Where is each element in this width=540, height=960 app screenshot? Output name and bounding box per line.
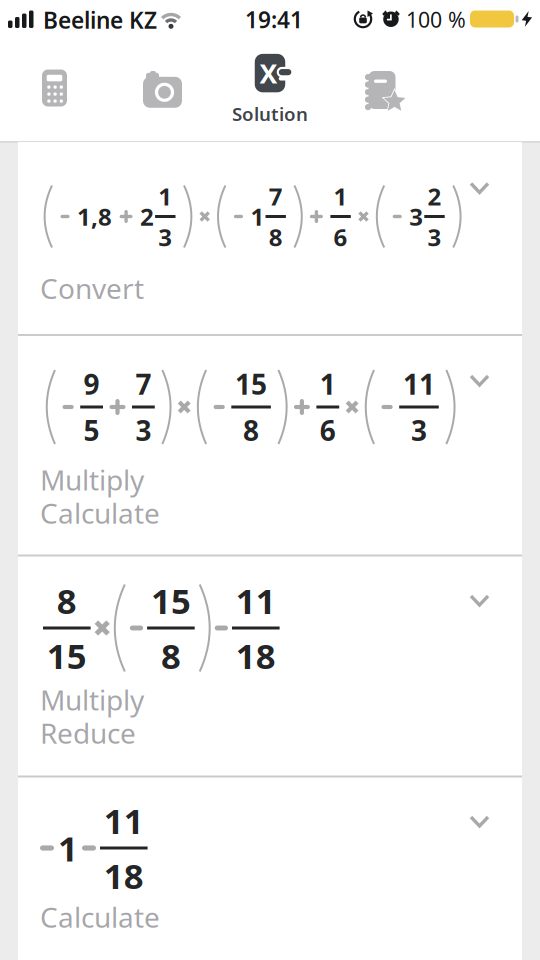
staticText: 6	[334, 221, 348, 253]
button[interactable]: Calculator	[24, 58, 84, 118]
staticText: Reduce	[40, 714, 136, 751]
button[interactable]: 1,8	[18, 142, 522, 334]
staticText: 11	[236, 577, 276, 623]
staticText: Convert	[40, 269, 144, 307]
staticText: 15	[47, 632, 87, 678]
staticText: 8	[243, 411, 259, 449]
staticText: Beeline KZ	[43, 5, 157, 35]
staticText: Calculate	[40, 898, 160, 935]
staticText: 100 %	[406, 5, 466, 34]
staticText: 1	[250, 201, 264, 232]
staticText: 3	[409, 201, 423, 232]
staticText: 6	[320, 411, 336, 449]
staticText: 3	[158, 221, 172, 253]
staticText: 1	[58, 825, 78, 871]
button[interactable]: 8	[18, 555, 522, 775]
button[interactable]: 1	[18, 776, 522, 960]
button[interactable]: Camera	[132, 56, 192, 116]
staticText: 2	[140, 201, 154, 232]
staticText: Calculate	[40, 494, 160, 531]
staticText: Multiply	[40, 681, 144, 718]
staticText: 7	[135, 365, 151, 402]
staticText: X	[259, 55, 277, 91]
button[interactable]: X	[205, 52, 335, 128]
staticText: 5	[84, 411, 100, 449]
staticText: 15	[151, 577, 191, 623]
staticText: 1,8	[77, 201, 112, 232]
button[interactable]: Notebook	[348, 60, 408, 120]
staticText: 3	[427, 221, 441, 253]
staticText: 7	[269, 180, 283, 212]
staticText: 9	[84, 365, 100, 402]
staticText: 1	[158, 180, 172, 212]
staticText: 8	[161, 632, 181, 678]
staticText: 3	[411, 411, 427, 449]
staticText: 15	[235, 365, 267, 402]
staticText: 1	[334, 180, 348, 212]
staticText: 18	[104, 852, 144, 898]
staticText: 18	[236, 632, 276, 678]
staticText: 11	[403, 365, 435, 402]
staticText: 2	[427, 180, 441, 212]
staticText: Solution	[232, 101, 308, 126]
button[interactable]: 9	[18, 335, 522, 555]
staticText: 1	[320, 365, 336, 402]
staticText: 3	[135, 411, 151, 449]
staticText: 8	[57, 577, 77, 623]
staticText: 19:41	[245, 4, 303, 34]
staticText: 8	[269, 221, 283, 253]
staticText: 11	[104, 797, 144, 843]
staticText: Multiply	[40, 461, 144, 498]
